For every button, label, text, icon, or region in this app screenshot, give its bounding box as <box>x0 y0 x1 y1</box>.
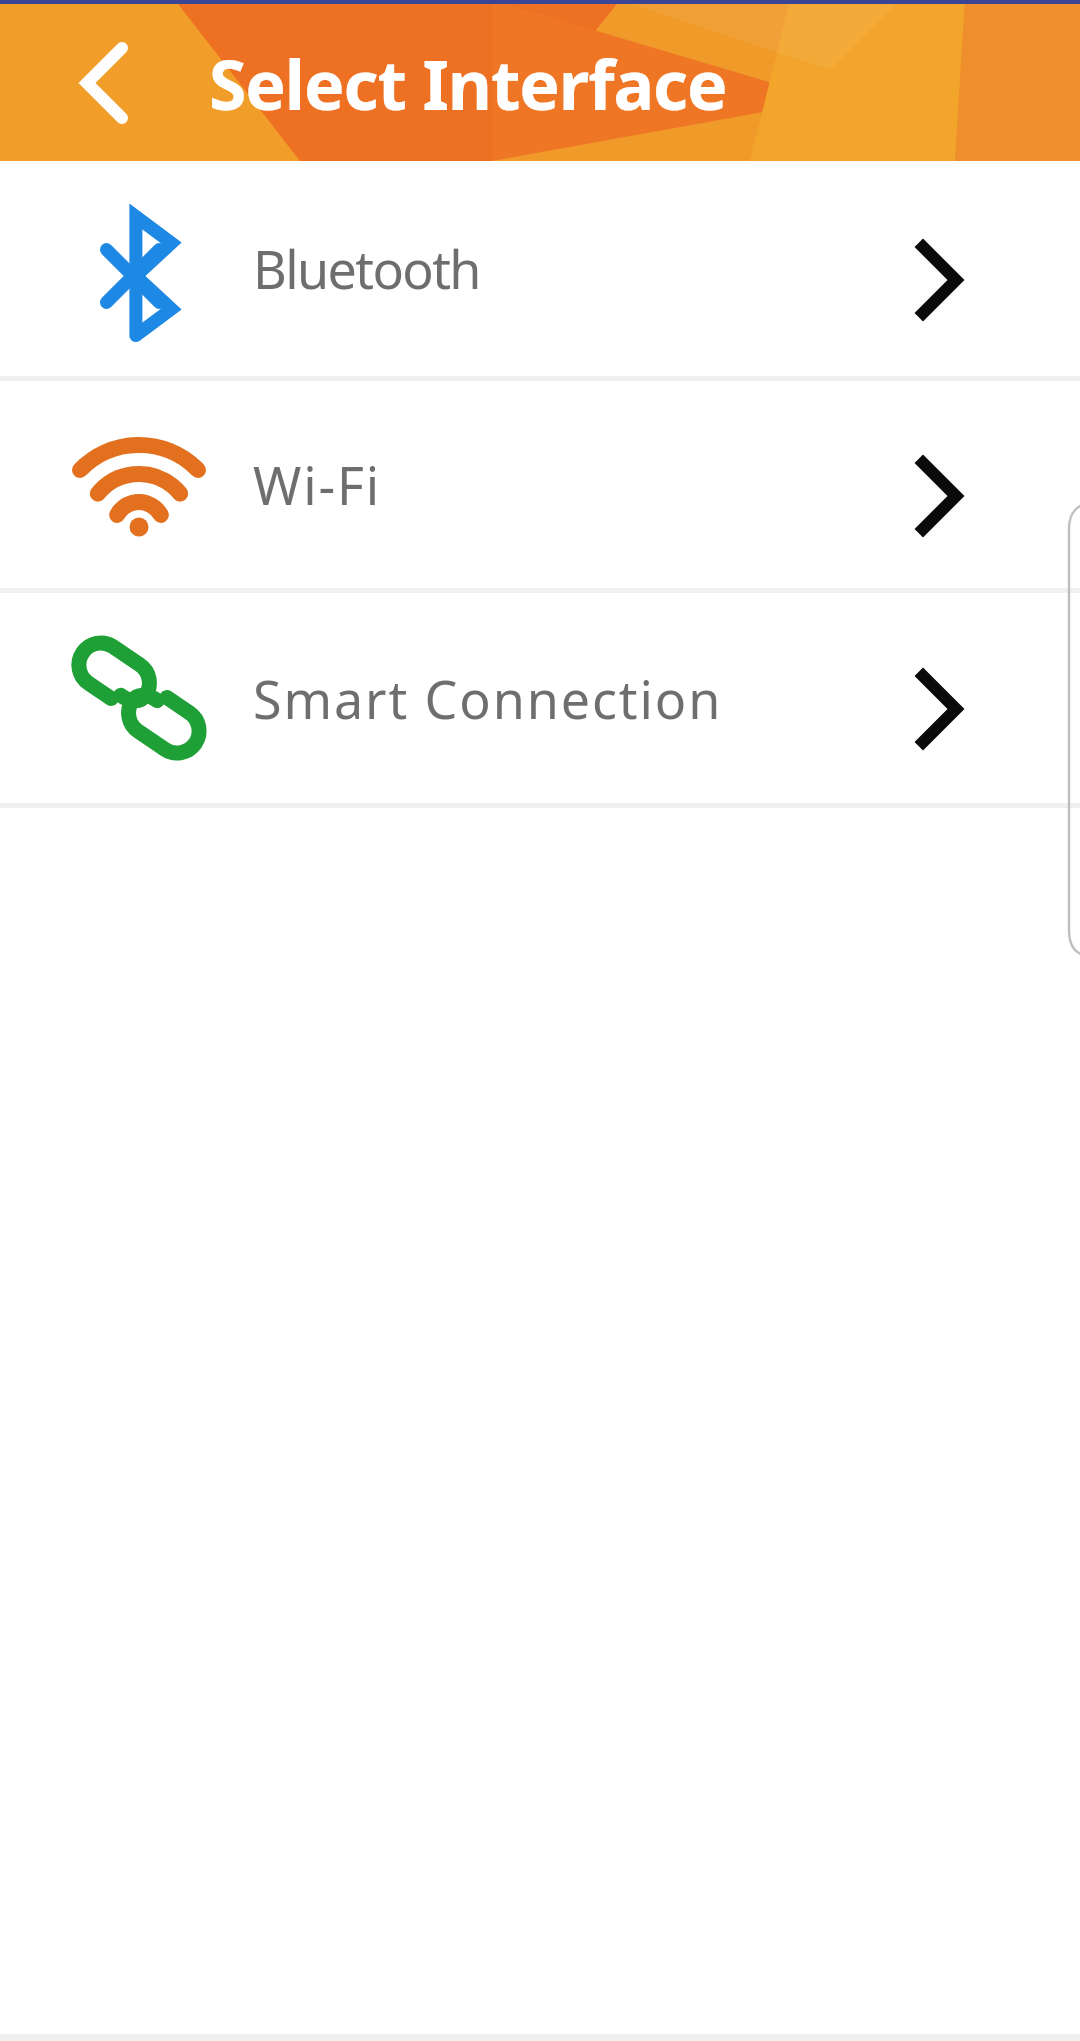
staticText: Smart Connection <box>253 663 723 734</box>
button[interactable]: Bluetooth <box>0 161 1080 376</box>
staticText: Bluetooth <box>253 233 480 304</box>
button[interactable]: Wi-Fi <box>0 381 1080 588</box>
button[interactable]: Smart Connection <box>0 593 1080 803</box>
staticText: Wi-Fi <box>253 449 381 520</box>
button[interactable]: Back <box>0 0 160 161</box>
staticText: Select Interface <box>209 37 727 130</box>
